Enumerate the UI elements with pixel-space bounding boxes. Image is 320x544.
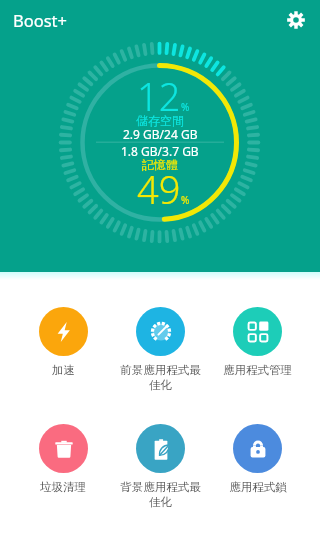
button[interactable]: 背景應用程式最 佳化 — [112, 424, 209, 509]
button[interactable]: 前景應用程式最 佳化 — [112, 307, 209, 392]
button[interactable]: 應用程式管理 — [209, 307, 306, 377]
staticText: 1.8 GB/3.7 GB — [121, 143, 199, 159]
staticText: 應用程式鎖 — [229, 480, 287, 494]
staticText: 前景應用程式最 佳化 — [120, 363, 201, 392]
staticText: 2.9 GB/24 GB — [123, 126, 198, 142]
staticText: 記憶體 — [142, 157, 178, 172]
staticText: 49 — [137, 163, 181, 215]
staticText: 加速 — [52, 363, 75, 377]
button[interactable]: 應用程式鎖 — [209, 424, 306, 494]
button[interactable]: 加速 — [14, 307, 112, 377]
button[interactable]: Settings — [276, 0, 316, 40]
staticText: % — [181, 100, 190, 114]
staticText: 12 — [137, 70, 181, 122]
staticText: 背景應用程式最 佳化 — [120, 480, 201, 509]
staticText: 儲存空間 — [136, 113, 184, 128]
staticText: % — [181, 193, 190, 207]
button[interactable]: 垃圾清理 — [14, 424, 112, 494]
staticText: 應用程式管理 — [223, 363, 292, 377]
staticText: 垃圾清理 — [40, 480, 86, 494]
staticText: Boost+ — [13, 9, 67, 31]
